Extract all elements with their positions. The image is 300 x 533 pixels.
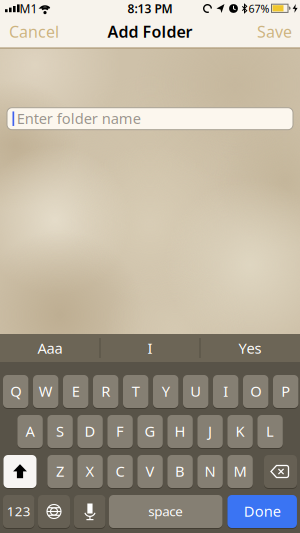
- button[interactable]: V: [137, 454, 163, 489]
- staticText: Enter folder name: [17, 108, 141, 128]
- staticText: T: [132, 381, 140, 401]
- staticText: M: [234, 461, 247, 481]
- staticText: M1: [19, 0, 37, 16]
- staticText: C: [116, 461, 125, 481]
- staticText: Aaa: [37, 338, 62, 358]
- button[interactable]: [3, 454, 36, 489]
- button[interactable]: [74, 494, 105, 529]
- staticText: 123: [7, 502, 31, 520]
- button[interactable]: N: [197, 454, 223, 489]
- button[interactable]: O: [243, 374, 268, 409]
- staticText: W: [39, 381, 53, 401]
- button[interactable]: T: [123, 374, 148, 409]
- staticText: V: [146, 461, 155, 481]
- staticText: K: [236, 421, 245, 441]
- button[interactable]: X: [77, 454, 103, 489]
- staticText: J: [208, 421, 212, 441]
- staticText: O: [250, 381, 261, 401]
- button[interactable]: D: [77, 414, 103, 449]
- staticText: Yes: [238, 338, 261, 358]
- staticText: P: [281, 381, 290, 401]
- button[interactable]: P: [273, 374, 298, 409]
- button[interactable]: L: [257, 414, 283, 449]
- button[interactable]: [264, 454, 297, 489]
- staticText: N: [205, 461, 216, 481]
- staticText: Y: [162, 381, 170, 401]
- button[interactable]: Enter folder name: [7, 108, 293, 130]
- button[interactable]: J: [197, 414, 223, 449]
- button[interactable]: K: [227, 414, 253, 449]
- staticText: 8:13 PM: [127, 0, 172, 16]
- button[interactable]: R: [93, 374, 118, 409]
- staticText: R: [101, 381, 110, 401]
- button[interactable]: H: [167, 414, 193, 449]
- staticText: E: [72, 381, 80, 401]
- staticText: G: [145, 421, 156, 441]
- staticText: X: [86, 461, 95, 481]
- staticText: H: [175, 421, 186, 441]
- button[interactable]: Yes: [201, 334, 299, 362]
- button[interactable]: W: [33, 374, 58, 409]
- button[interactable]: A: [17, 414, 43, 449]
- staticText: B: [175, 461, 185, 481]
- staticText: S: [56, 421, 64, 441]
- button[interactable]: C: [107, 454, 133, 489]
- staticText: U: [190, 381, 201, 401]
- button[interactable]: space: [109, 494, 222, 529]
- button[interactable]: U: [183, 374, 208, 409]
- staticText: Z: [56, 461, 64, 481]
- button[interactable]: I: [101, 334, 199, 362]
- staticText: Cancel: [9, 21, 59, 42]
- button[interactable]: [38, 494, 70, 529]
- staticText: F: [116, 421, 124, 441]
- staticText: I: [223, 381, 228, 401]
- staticText: Save: [257, 21, 292, 42]
- button[interactable]: Aaa: [1, 334, 99, 362]
- staticText: Add Folder: [107, 21, 192, 42]
- button[interactable]: 123: [3, 494, 34, 529]
- staticText: I: [147, 338, 152, 358]
- staticText: 67%: [248, 1, 269, 16]
- button[interactable]: Z: [47, 454, 73, 489]
- button[interactable]: Y: [153, 374, 178, 409]
- staticText: A: [26, 421, 35, 441]
- button[interactable]: M: [227, 454, 253, 489]
- staticText: Done: [244, 501, 281, 521]
- button[interactable]: Cancel: [6, 16, 62, 46]
- button[interactable]: E: [63, 374, 88, 409]
- staticText: D: [85, 421, 96, 441]
- button[interactable]: Q: [3, 374, 28, 409]
- button[interactable]: F: [107, 414, 133, 449]
- staticText: space: [148, 502, 183, 520]
- staticText: L: [266, 421, 274, 441]
- button[interactable]: G: [137, 414, 163, 449]
- button[interactable]: Done: [227, 494, 297, 529]
- button[interactable]: S: [47, 414, 73, 449]
- staticText: Q: [10, 381, 21, 401]
- button[interactable]: B: [167, 454, 193, 489]
- button[interactable]: Save: [251, 16, 297, 46]
- button[interactable]: I: [213, 374, 238, 409]
